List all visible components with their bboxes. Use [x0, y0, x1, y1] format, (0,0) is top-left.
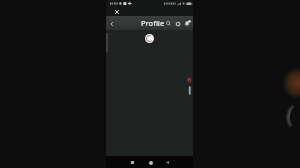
button[interactable]: Settings [173, 19, 182, 28]
button[interactable]: Profile photo [187, 75, 193, 101]
button[interactable]: Recents [128, 158, 137, 167]
staticText: Profile [141, 18, 165, 28]
button[interactable]: Close [113, 8, 121, 16]
button[interactable]: Search [164, 19, 173, 28]
button[interactable]: Back [107, 19, 116, 28]
button[interactable]: Back [163, 158, 172, 167]
button[interactable]: Home [146, 158, 155, 167]
button[interactable]: Notifications [183, 19, 192, 28]
other: Refreshing [145, 34, 154, 43]
